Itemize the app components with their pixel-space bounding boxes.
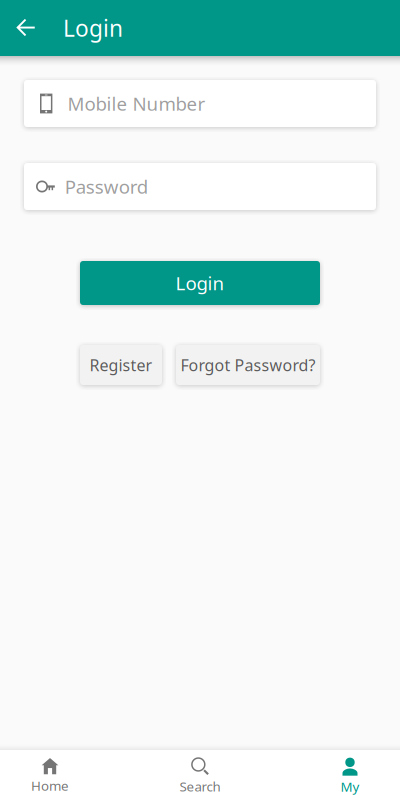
button[interactable]: Home (0, 750, 100, 801)
staticText: Register (89, 354, 152, 376)
button[interactable]: Back (8, 0, 44, 56)
staticText: Home (31, 777, 69, 794)
button[interactable]: Login (80, 261, 320, 305)
staticText: Password (65, 174, 148, 199)
staticText: Forgot Password? (180, 354, 315, 376)
staticText: My (340, 778, 359, 795)
button[interactable]: Search (100, 750, 300, 801)
staticText: Mobile Number (67, 91, 205, 116)
button[interactable]: Password (24, 163, 376, 210)
staticText: Login (175, 271, 224, 295)
button[interactable]: Register (80, 345, 162, 385)
staticText: Search (179, 777, 220, 795)
button[interactable]: My (300, 750, 400, 801)
button[interactable]: Mobile Number (24, 80, 376, 127)
button[interactable]: Forgot Password? (176, 345, 320, 385)
staticText: Login (63, 13, 123, 43)
